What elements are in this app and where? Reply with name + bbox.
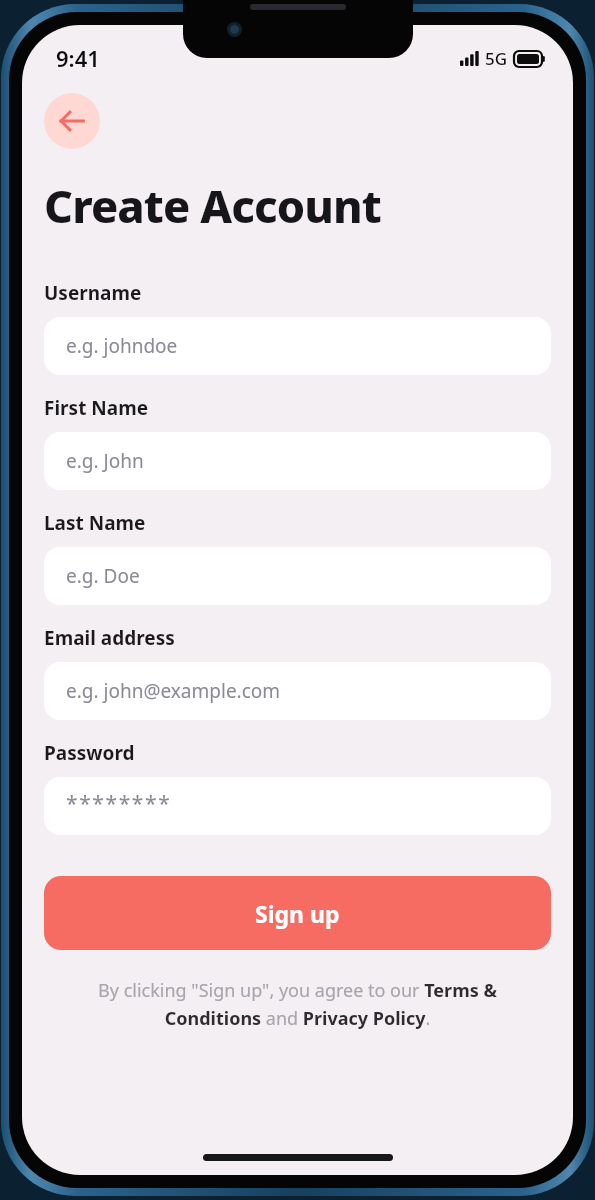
staticText: 9:41 bbox=[56, 43, 100, 73]
button[interactable]: e.g. John bbox=[44, 432, 551, 490]
staticText: Create Account bbox=[44, 175, 381, 236]
staticText: 5G bbox=[485, 47, 508, 70]
staticText: First Name bbox=[44, 395, 149, 421]
button[interactable]: e.g. johndoe bbox=[44, 317, 551, 375]
button[interactable]: e.g. Doe bbox=[44, 547, 551, 605]
staticText: By clicking "Sign up", you agree to our … bbox=[48, 978, 547, 1030]
staticText: Sign up bbox=[255, 898, 340, 929]
staticText: Password bbox=[44, 740, 135, 766]
staticText: ******** bbox=[66, 789, 172, 818]
button[interactable]: e.g. john@example.com bbox=[44, 662, 551, 720]
button[interactable]: ******** bbox=[44, 777, 551, 835]
staticText: Username bbox=[44, 280, 142, 306]
button[interactable]: Sign up bbox=[44, 876, 551, 950]
staticText: Last Name bbox=[44, 510, 146, 536]
staticText: e.g. johndoe bbox=[66, 333, 178, 359]
staticText: e.g. John bbox=[66, 448, 144, 474]
button[interactable]: By clicking "Sign up", you agree to our … bbox=[48, 978, 547, 1030]
staticText: e.g. Doe bbox=[66, 563, 140, 589]
staticText: Email address bbox=[44, 625, 175, 651]
button[interactable]: Back bbox=[44, 93, 100, 149]
staticText: e.g. john@example.com bbox=[66, 678, 281, 704]
